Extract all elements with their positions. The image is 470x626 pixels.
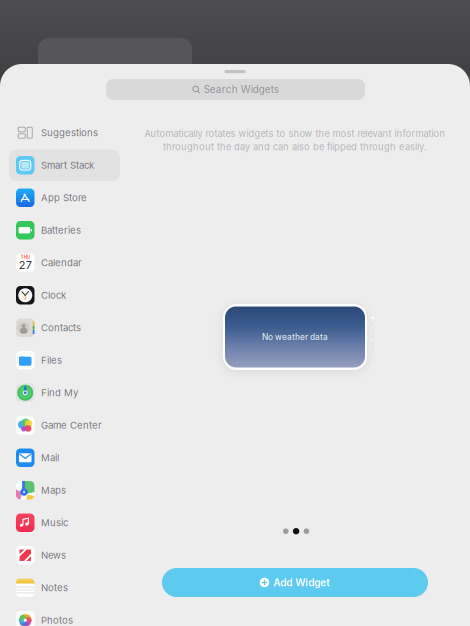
- staticText: No weather data: [262, 332, 328, 342]
- staticText: Files: [41, 354, 62, 366]
- button[interactable]: Music: [9, 507, 120, 538]
- staticText: Suggestions: [41, 127, 98, 138]
- button[interactable]: Files: [9, 344, 120, 376]
- staticText: THU: [21, 255, 30, 260]
- button[interactable]: Mail: [9, 442, 120, 473]
- staticText: App Store: [41, 192, 87, 203]
- button[interactable]: THU: [9, 247, 120, 278]
- button[interactable]: Notes: [9, 572, 120, 603]
- button[interactable]: App Store: [9, 182, 120, 213]
- button[interactable]: Suggestions: [9, 117, 120, 148]
- button[interactable]: Contacts: [9, 312, 120, 343]
- button[interactable]: Clock: [9, 279, 120, 311]
- staticText: Mail: [41, 452, 59, 463]
- button[interactable]: Search Widgets: [106, 79, 365, 100]
- button[interactable]: Find My: [9, 377, 120, 408]
- staticText: Add Widget: [273, 576, 330, 589]
- staticText: Automatically rotates widgets to show th…: [144, 128, 445, 139]
- staticText: Batteries: [41, 224, 81, 236]
- button[interactable]: Add Widget: [162, 568, 428, 597]
- staticText: Calendar: [41, 257, 82, 268]
- button[interactable]: Batteries: [9, 214, 120, 246]
- staticText: Find My: [41, 387, 78, 398]
- button[interactable]: Game Center: [9, 409, 120, 441]
- staticText: Music: [41, 517, 68, 528]
- staticText: 27: [19, 258, 32, 272]
- staticText: Notes: [41, 582, 68, 593]
- button[interactable]: Photos: [9, 604, 120, 626]
- staticText: Search Widgets: [204, 83, 279, 95]
- staticText: Game Center: [41, 419, 102, 431]
- staticText: News: [41, 549, 66, 561]
- staticText: Clock: [41, 289, 66, 301]
- staticText: Photos: [41, 614, 73, 626]
- staticText: Smart Stack: [41, 159, 94, 171]
- staticText: throughout the day and can also be flipp…: [163, 141, 427, 153]
- button[interactable]: Maps: [9, 474, 120, 506]
- button[interactable]: News: [9, 539, 120, 571]
- staticText: Maps: [41, 484, 66, 496]
- button[interactable]: Smart Stack: [9, 149, 120, 181]
- staticText: Contacts: [41, 322, 81, 333]
